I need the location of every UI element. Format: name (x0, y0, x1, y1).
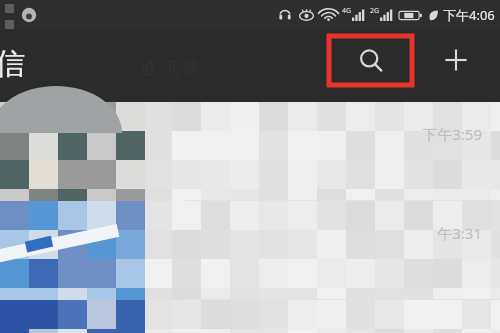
button[interactable] (0, 300, 500, 333)
staticText: 午3:31 (437, 223, 482, 243)
staticText: 下午4:06 (443, 6, 495, 24)
button[interactable]: 下午3:59 (0, 102, 500, 200)
staticText: 下午3:59 (422, 124, 482, 144)
button[interactable]: Add (432, 36, 480, 84)
staticText: 信 (0, 45, 25, 83)
button[interactable]: 午3:31 (0, 201, 500, 299)
button[interactable]: Search (329, 36, 412, 85)
staticText: 4G (342, 6, 352, 16)
staticText: 2G (370, 6, 380, 16)
